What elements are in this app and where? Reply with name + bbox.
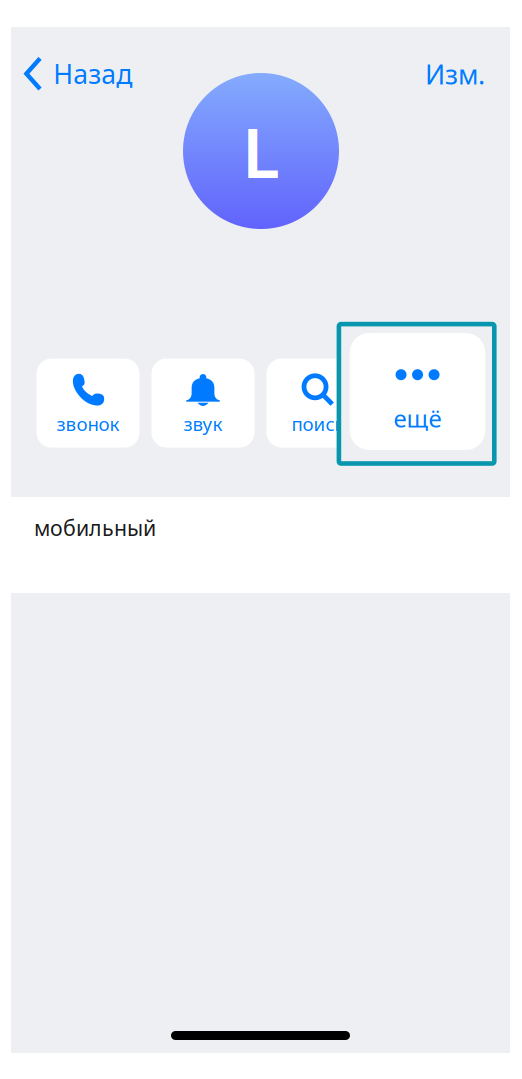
staticText: поиск [291,411,344,436]
staticText: ещё [394,402,442,434]
button[interactable]: звук [151,359,254,448]
button[interactable]: звонок [36,359,139,448]
staticText: мобильный [34,513,156,542]
staticText: звук [183,411,222,436]
staticText: Изм. [425,56,485,92]
button[interactable]: поиск [266,359,369,448]
button[interactable]: ещё [350,333,485,450]
staticText: звонок [56,411,119,436]
staticText: L [242,105,280,197]
staticText: Назад [53,56,132,91]
button[interactable]: Назад [11,48,145,99]
button[interactable]: Изм. [411,48,499,100]
